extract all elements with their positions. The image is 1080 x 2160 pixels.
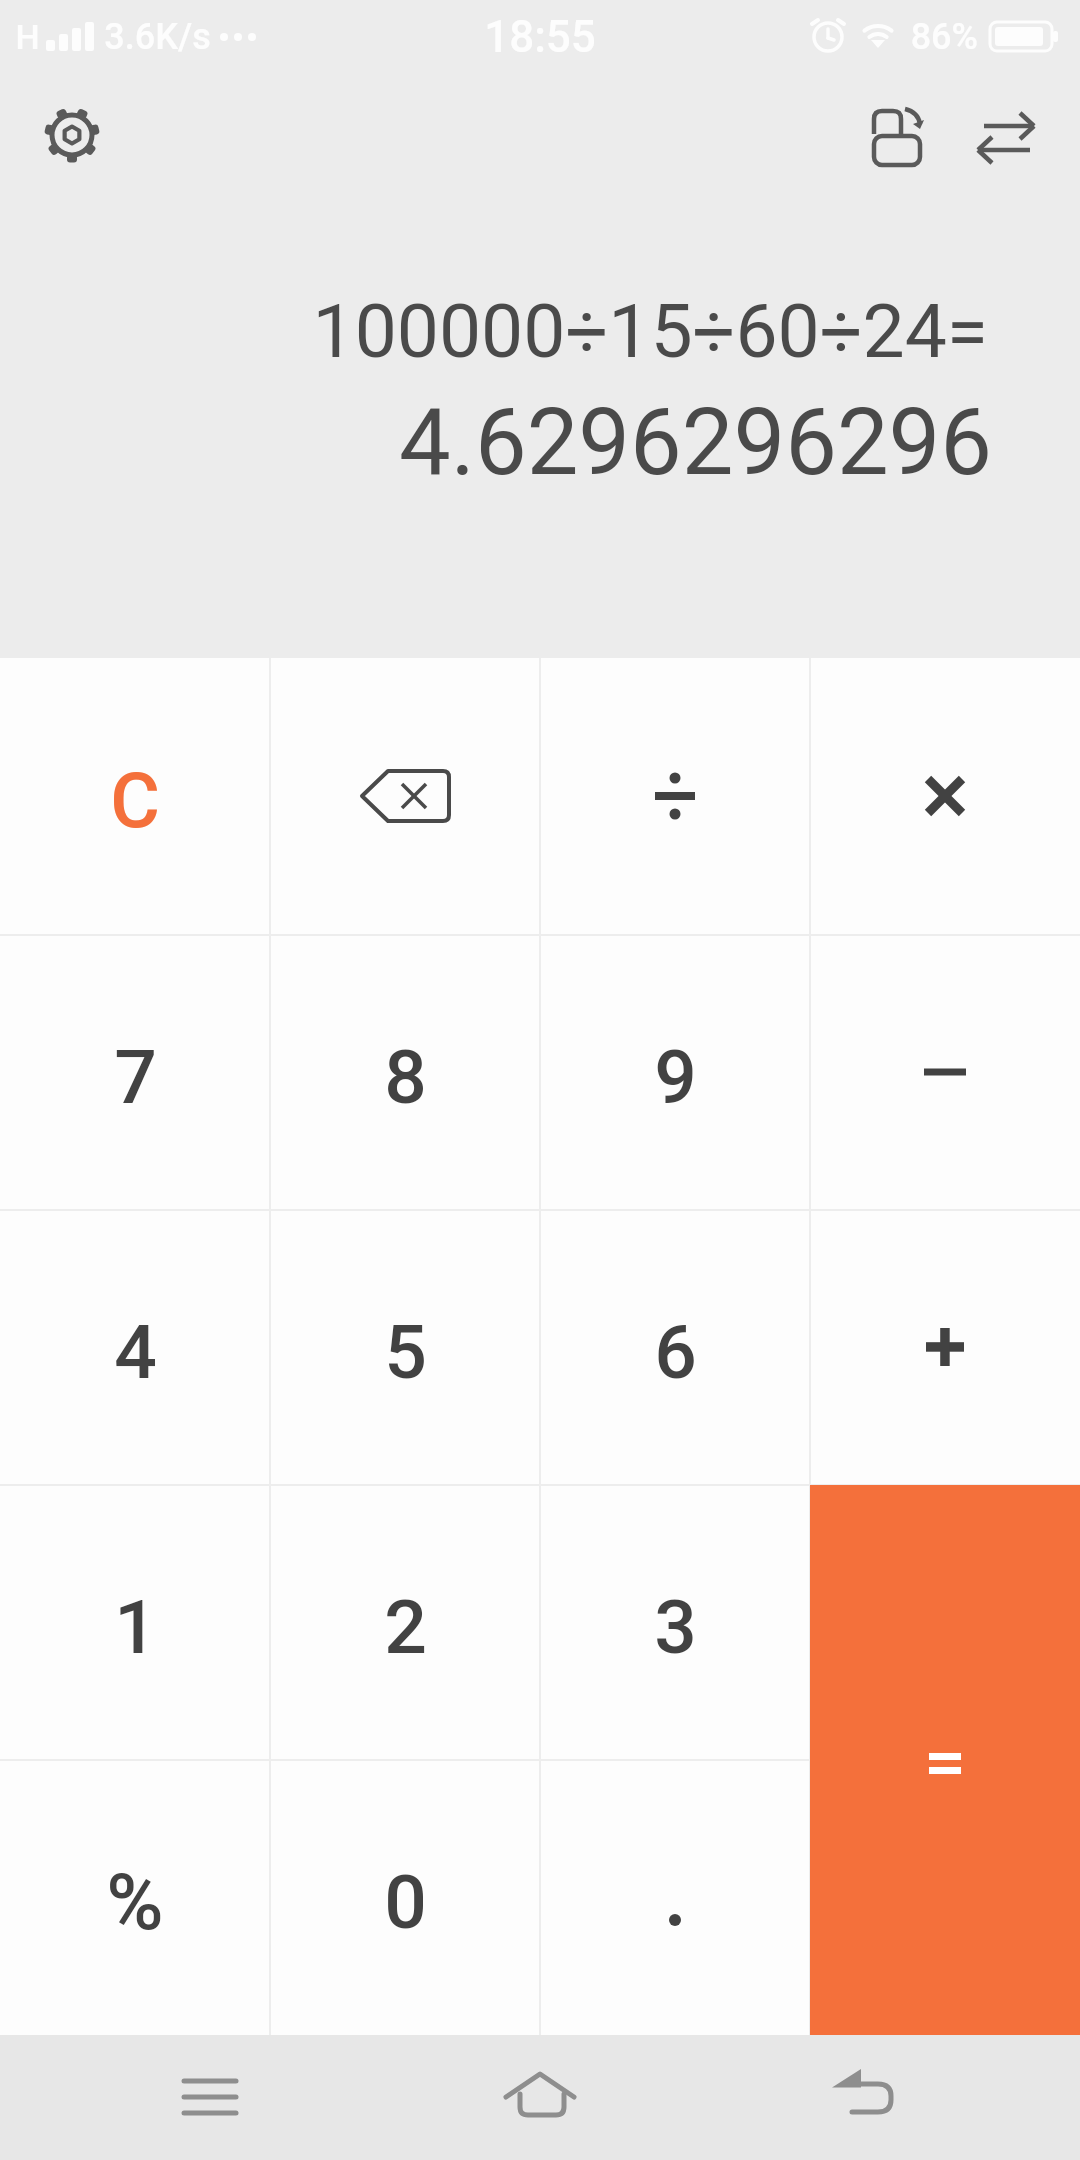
button[interactable]: 2 (270, 1489, 540, 1765)
staticText: 5 (384, 1308, 427, 1396)
staticText: 4 (114, 1308, 157, 1396)
button[interactable] (968, 102, 1044, 174)
staticText: 7 (114, 1033, 157, 1121)
button[interactable]: 7 (0, 939, 270, 1215)
button[interactable] (540, 658, 810, 934)
staticText: 8 (384, 1033, 427, 1121)
staticText: 6 (654, 1308, 697, 1396)
button[interactable] (810, 1209, 1080, 1485)
button[interactable] (270, 658, 540, 934)
button[interactable] (480, 2035, 600, 2160)
staticText: 86% (910, 16, 978, 58)
button[interactable] (540, 1759, 810, 2035)
staticText: 2 (384, 1583, 427, 1671)
button[interactable] (810, 1485, 1080, 2035)
button[interactable] (36, 99, 108, 171)
staticText: 0 (384, 1858, 427, 1946)
staticText: H (15, 17, 40, 57)
staticText: 18:55 (484, 11, 596, 63)
button[interactable]: C (0, 662, 270, 938)
button[interactable] (810, 658, 1080, 934)
button[interactable]: 1 (0, 1489, 270, 1765)
staticText: 3.6K/s (104, 16, 211, 58)
button[interactable]: 9 (540, 939, 810, 1215)
button[interactable] (810, 934, 1080, 1210)
staticText: 3 (654, 1583, 697, 1671)
button[interactable] (860, 98, 932, 178)
staticText: 100000÷15÷60÷24= (312, 287, 988, 375)
button[interactable]: 6 (540, 1214, 810, 1490)
staticText: C (110, 756, 160, 845)
staticText: 4.6296296296 (398, 389, 992, 497)
button[interactable]: 3 (540, 1489, 810, 1765)
button[interactable]: 4 (0, 1214, 270, 1490)
button[interactable]: 5 (270, 1214, 540, 1490)
button[interactable]: 8 (270, 939, 540, 1215)
button[interactable] (810, 2035, 930, 2160)
staticText: 1 (114, 1583, 157, 1671)
button[interactable]: 0 (270, 1764, 540, 2040)
staticText: % (106, 1857, 164, 1948)
button[interactable]: % (0, 1764, 270, 2040)
button[interactable] (150, 2035, 270, 2160)
staticText: 9 (654, 1033, 697, 1121)
